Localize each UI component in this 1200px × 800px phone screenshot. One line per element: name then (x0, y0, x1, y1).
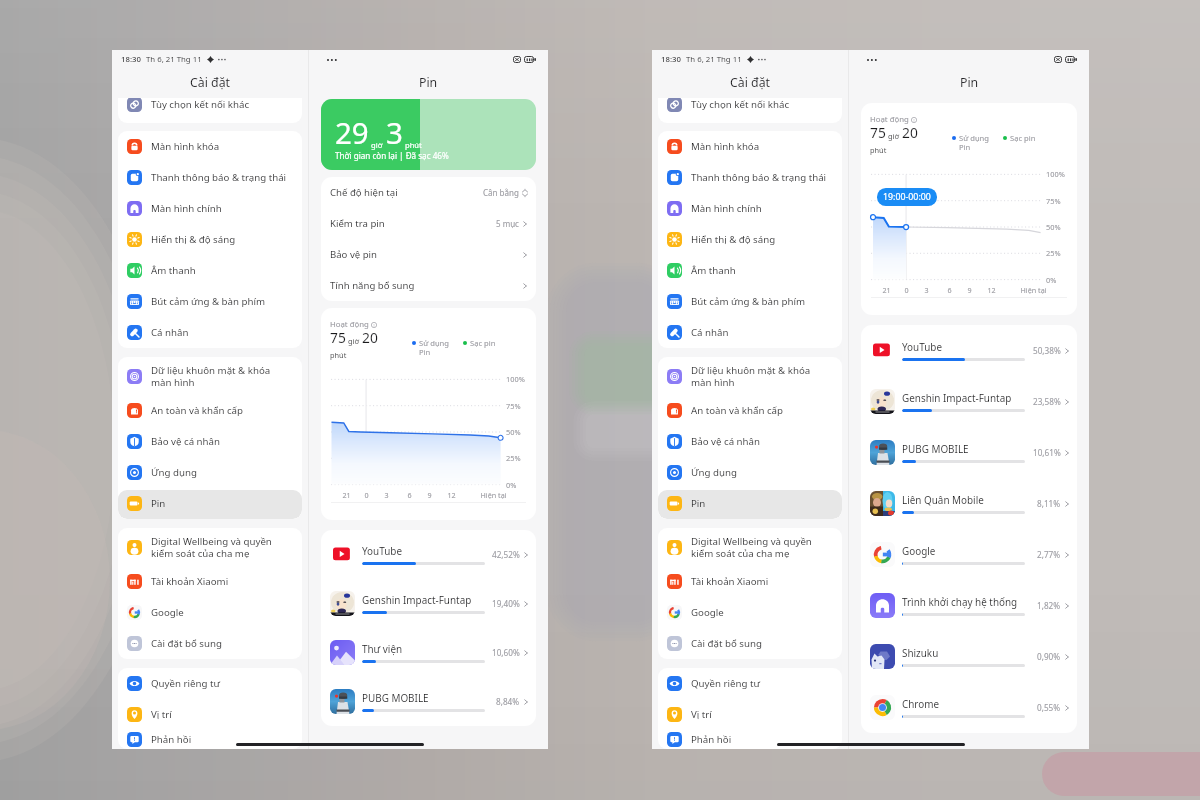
button[interactable]: Google (118, 597, 302, 628)
staticText: 75% (506, 401, 521, 411)
button[interactable]: Genshin Impact-Funtap (321, 579, 536, 628)
staticText: 0% (1046, 275, 1057, 285)
button[interactable]: Digital Wellbeing và quyền kiểm soát của… (118, 528, 302, 566)
staticText: Phản hồi (691, 733, 732, 746)
staticText: Pin (960, 74, 979, 91)
button[interactable]: Quyền riêng tư (118, 668, 302, 699)
button[interactable]: YouTube (861, 325, 1077, 376)
staticText: Cài đặt (190, 74, 230, 91)
staticText: 19:00-00:00 (883, 191, 931, 203)
button[interactable]: Tùy chọn kết nối khác (658, 98, 842, 117)
staticText: 50% (1046, 222, 1061, 232)
staticText: Th 6, 21 Thg 11 (686, 54, 742, 65)
staticText: Vị trí (151, 708, 172, 721)
button[interactable]: An toàn và khẩn cấp (658, 395, 842, 426)
button[interactable]: Âm thanh (658, 255, 842, 286)
button[interactable]: Màn hình khóa (658, 131, 842, 162)
button[interactable]: Quyền riêng tư (658, 668, 842, 699)
button[interactable]: Tài khoản Xiaomi (118, 566, 302, 597)
button[interactable]: Thanh thông báo & trạng thái (658, 162, 842, 193)
staticText: 0,55% (1037, 702, 1061, 713)
button[interactable]: Dữ liệu khuôn mặt & khóa màn hình (118, 357, 302, 395)
button[interactable]: Pin (658, 488, 842, 519)
staticText: 8,84% (496, 696, 520, 707)
button[interactable]: Màn hình chính (658, 193, 842, 224)
button[interactable]: Tính năng bổ sung (330, 270, 529, 301)
button[interactable]: PUBG MOBILE (321, 677, 536, 726)
staticText: Google (902, 544, 936, 557)
button[interactable]: Phản hồi (658, 730, 842, 749)
button[interactable]: Google (861, 529, 1077, 580)
button[interactable]: Thanh thông báo & trạng thái (118, 162, 302, 193)
staticText: 21 (882, 285, 891, 295)
button[interactable]: Kiểm tra pin (330, 208, 529, 239)
button[interactable]: Cài đặt bổ sung (118, 628, 302, 659)
button[interactable]: Bảo vệ cá nhân (658, 426, 842, 457)
staticText: Hiện tại (480, 490, 507, 500)
button[interactable]: Pin (118, 488, 302, 519)
button[interactable]: Genshin Impact-Funtap (861, 376, 1077, 427)
staticText: 8,11% (1037, 498, 1061, 509)
button[interactable]: Vị trí (658, 699, 842, 730)
staticText: Chế độ hiện tại (330, 186, 398, 199)
button[interactable]: Ứng dụng (658, 457, 842, 488)
staticText: Tùy chọn kết nối khác (151, 98, 250, 111)
staticText: PUBG MOBILE (362, 691, 429, 704)
button[interactable]: Thư viện (321, 628, 536, 677)
staticText: 2,77% (1037, 549, 1061, 560)
button[interactable]: Cá nhân (658, 317, 842, 348)
button[interactable]: Bảo vệ pin (330, 239, 529, 270)
button[interactable]: Google (658, 597, 842, 628)
staticText: Shizuku (902, 646, 939, 659)
button[interactable]: 29 (321, 99, 536, 170)
button[interactable]: Shizuku (861, 631, 1077, 682)
staticText: Kiểm tra pin (330, 217, 385, 230)
staticText: 9 (427, 490, 432, 500)
button[interactable]: Chrome (861, 682, 1077, 733)
button[interactable]: An toàn và khẩn cấp (118, 395, 302, 426)
button[interactable]: YouTube (321, 530, 536, 579)
staticText: 0 (364, 490, 369, 500)
staticText: 12 (447, 490, 456, 500)
button[interactable]: Tùy chọn kết nối khác (118, 98, 302, 117)
button[interactable]: Bảo vệ cá nhân (118, 426, 302, 457)
button[interactable]: Màn hình chính (118, 193, 302, 224)
button[interactable]: Bút cảm ứng & bàn phím (658, 286, 842, 317)
button[interactable]: Chế độ hiện tại (330, 177, 529, 208)
staticText: Phản hồi (151, 733, 192, 746)
staticText: Hoạt động (330, 319, 369, 330)
button[interactable]: Digital Wellbeing và quyền kiểm soát của… (658, 528, 842, 566)
button[interactable]: Hiển thị & độ sáng (118, 224, 302, 255)
button[interactable]: Hiển thị & độ sáng (658, 224, 842, 255)
button[interactable]: Liên Quân Mobile (861, 478, 1077, 529)
staticText: 50,38% (1033, 345, 1061, 356)
staticText: phút (870, 145, 887, 155)
staticText: 10,60% (492, 647, 520, 658)
staticText: 0,90% (1037, 651, 1061, 662)
button[interactable]: Màn hình khóa (118, 131, 302, 162)
staticText: Thời gian còn lại | Đã sạc 46% (335, 150, 449, 161)
staticText: Cá nhân (691, 326, 729, 339)
staticText: Vị trí (691, 708, 712, 721)
staticText: Cá nhân (151, 326, 189, 339)
staticText: PUBG MOBILE (902, 442, 969, 455)
button[interactable]: Dữ liệu khuôn mặt & khóa màn hình (658, 357, 842, 395)
button[interactable]: Cài đặt bổ sung (658, 628, 842, 659)
button[interactable]: Tài khoản Xiaomi (658, 566, 842, 597)
button[interactable]: Cá nhân (118, 317, 302, 348)
staticText: 0% (506, 480, 517, 490)
staticText: Pin (419, 74, 438, 91)
button[interactable]: Ứng dụng (118, 457, 302, 488)
button[interactable]: PUBG MOBILE (861, 427, 1077, 478)
button[interactable]: Trình khởi chạy hệ thống (861, 580, 1077, 631)
staticText: 21 (342, 490, 351, 500)
button[interactable]: Vị trí (118, 699, 302, 730)
staticText: 18:30 (121, 54, 141, 65)
staticText: Quyền riêng tư (151, 677, 220, 690)
button[interactable]: Phản hồi (118, 730, 302, 749)
button[interactable]: Bút cảm ứng & bàn phím (118, 286, 302, 317)
staticText: Genshin Impact-Funtap (902, 391, 1012, 404)
button[interactable]: Âm thanh (118, 255, 302, 286)
staticText: Google (691, 606, 724, 619)
staticText: 0 (904, 285, 909, 295)
